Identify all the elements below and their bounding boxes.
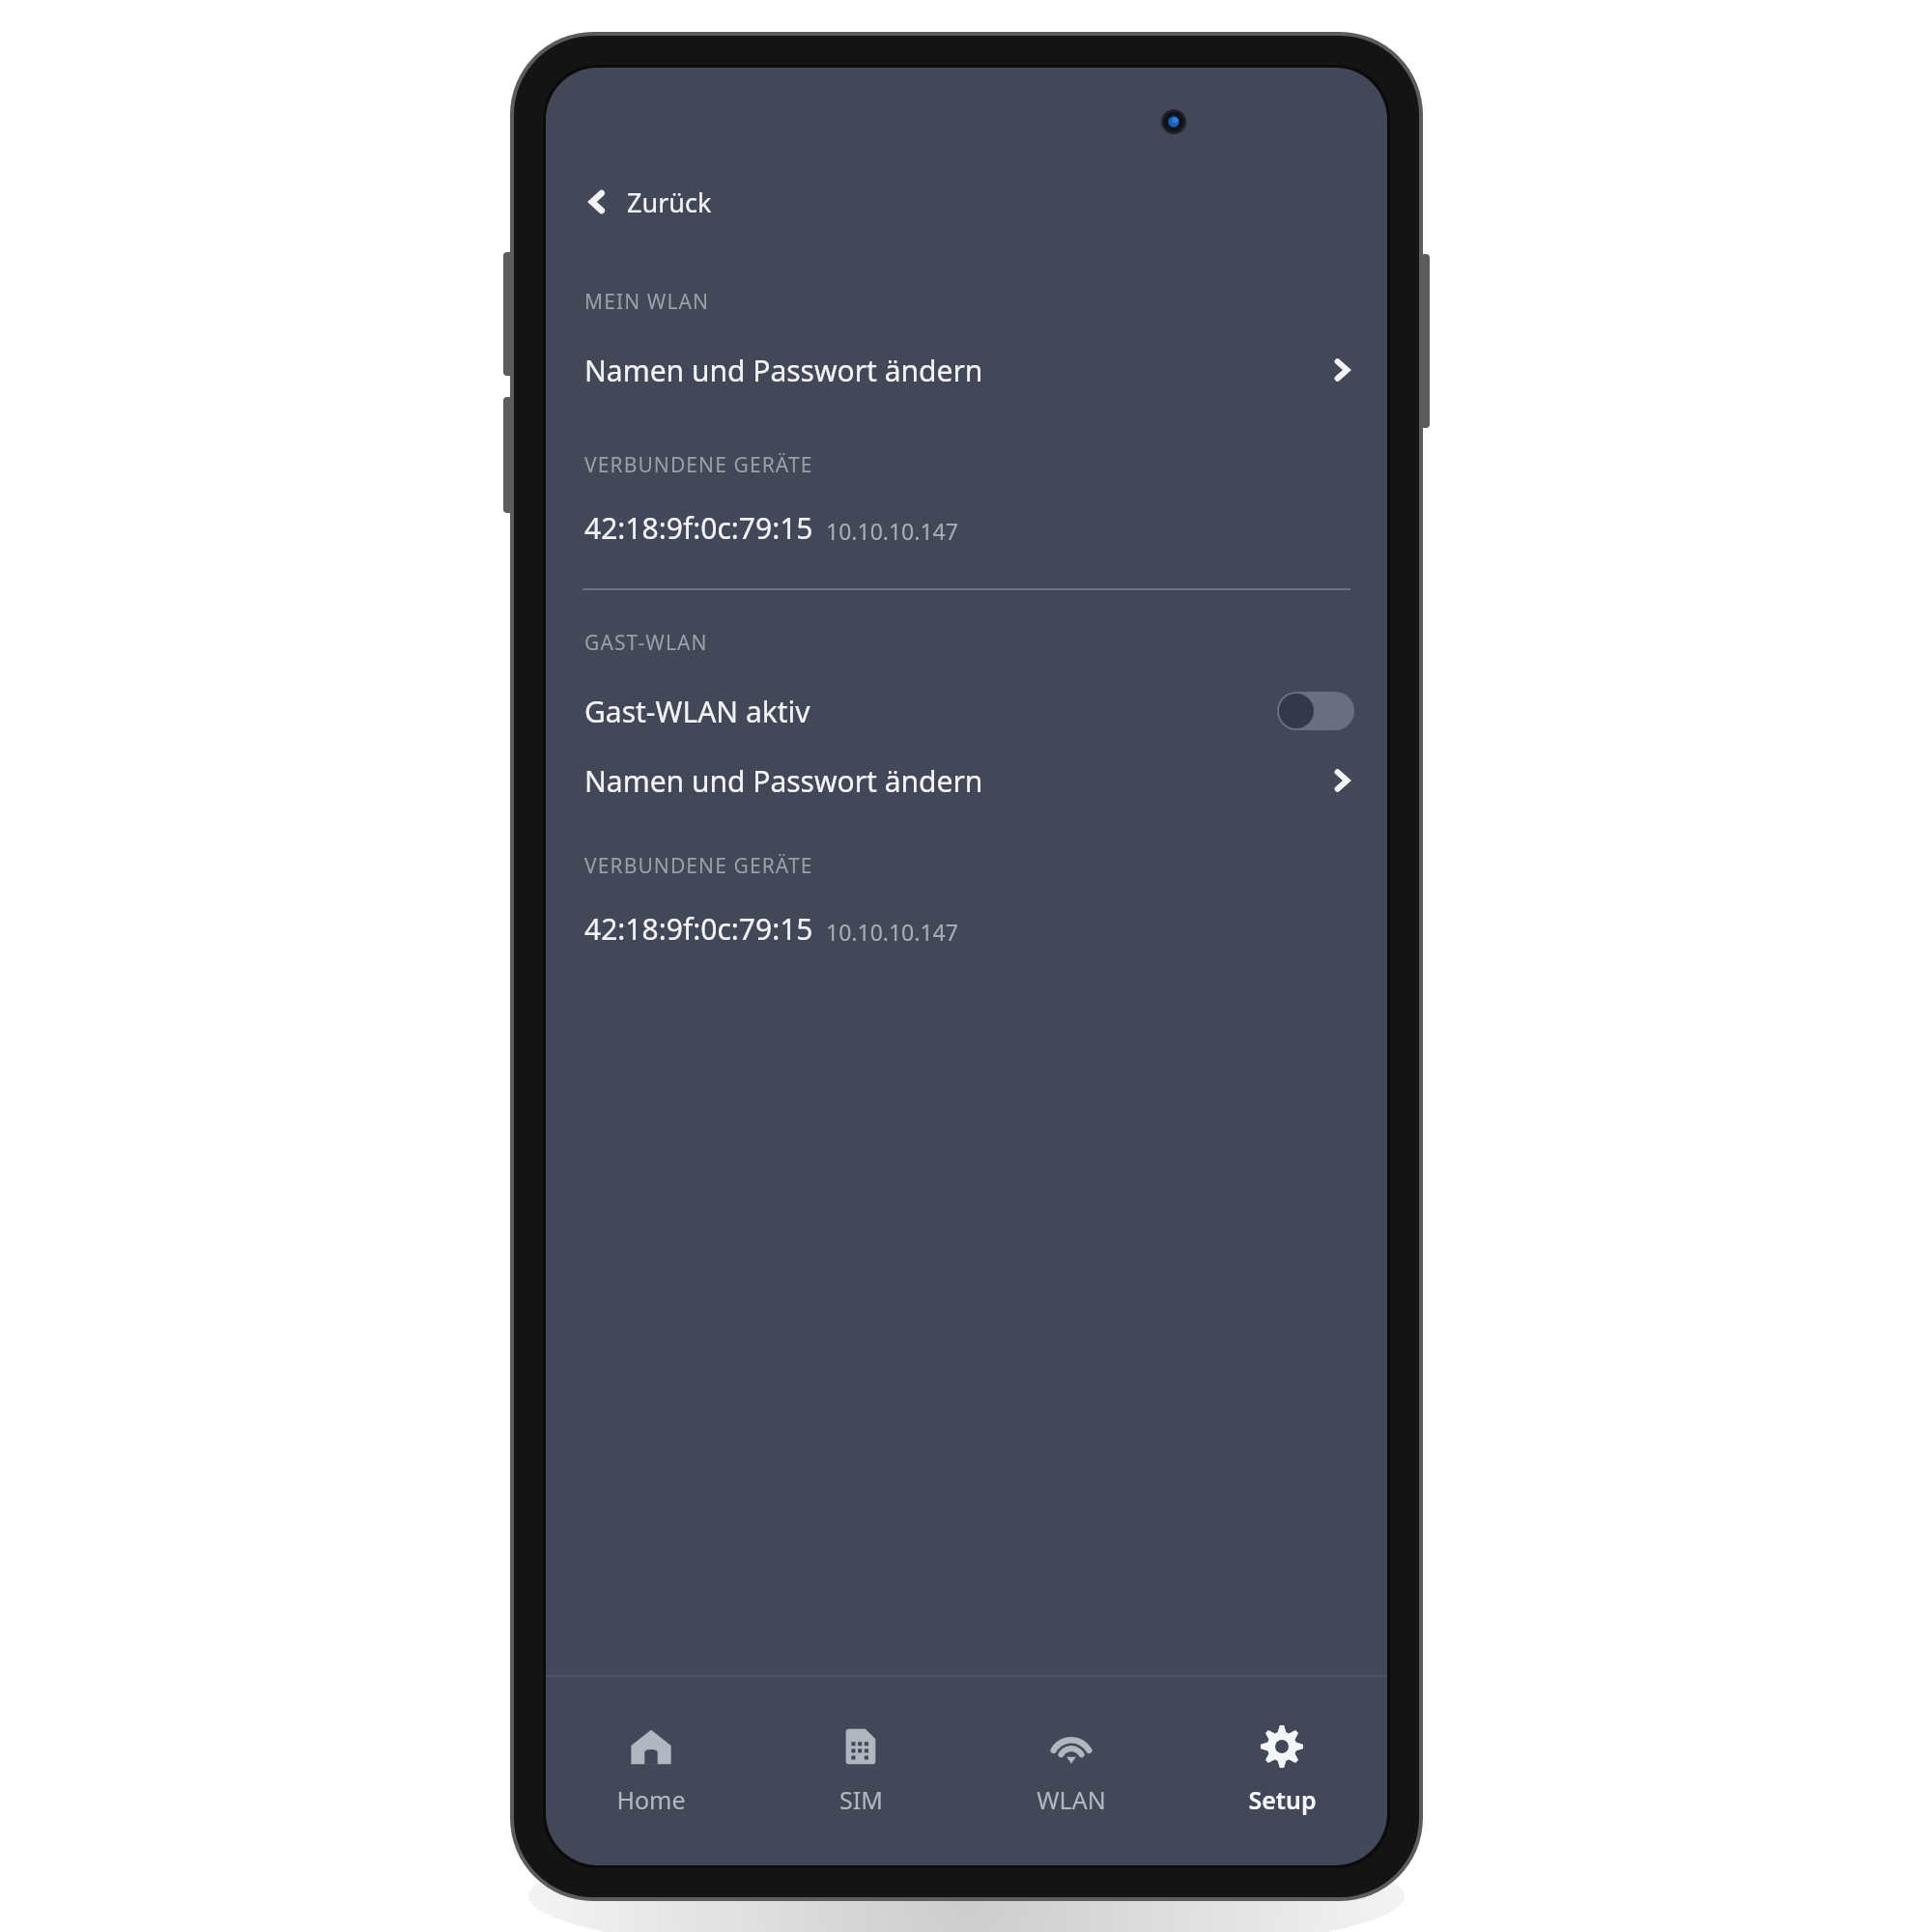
button[interactable]: Zurück (546, 164, 1387, 240)
staticText: Namen und Passwort ändern (584, 351, 983, 390)
staticText: 42:18:9f:0c:79:15 (584, 909, 813, 949)
staticText: Gast-WLAN aktiv (584, 692, 810, 731)
button[interactable]: Namen und Passwort ändern (546, 335, 1387, 405)
button[interactable]: SIM (755, 1677, 966, 1865)
staticText: Home (616, 1783, 686, 1816)
staticText: 42:18:9f:0c:79:15 (584, 508, 813, 548)
button[interactable]: 42:18:9f:0c:79:15 (546, 508, 1387, 548)
staticText: Namen und Passwort ändern (584, 761, 983, 801)
staticText: SIM (839, 1783, 883, 1816)
staticText: Zurück (627, 185, 712, 220)
button[interactable]: Namen und Passwort ändern (546, 746, 1387, 815)
staticText: 10.10.10.147 (826, 516, 958, 546)
staticText: 10.10.10.147 (826, 917, 958, 947)
staticText: Setup (1248, 1783, 1317, 1816)
staticText: VERBUNDENE GERÄTE (584, 852, 813, 880)
button[interactable]: WLAN (966, 1677, 1177, 1865)
button[interactable]: 42:18:9f:0c:79:15 (546, 909, 1387, 949)
button[interactable]: Home (546, 1677, 755, 1865)
button[interactable]: Gast-WLAN aktiv (546, 676, 1387, 746)
button[interactable]: Setup (1177, 1677, 1387, 1865)
staticText: GAST-WLAN (584, 629, 708, 657)
staticText: VERBUNDENE GERÄTE (584, 451, 813, 479)
staticText: WLAN (1037, 1783, 1106, 1816)
staticText: MEIN WLAN (584, 288, 710, 316)
